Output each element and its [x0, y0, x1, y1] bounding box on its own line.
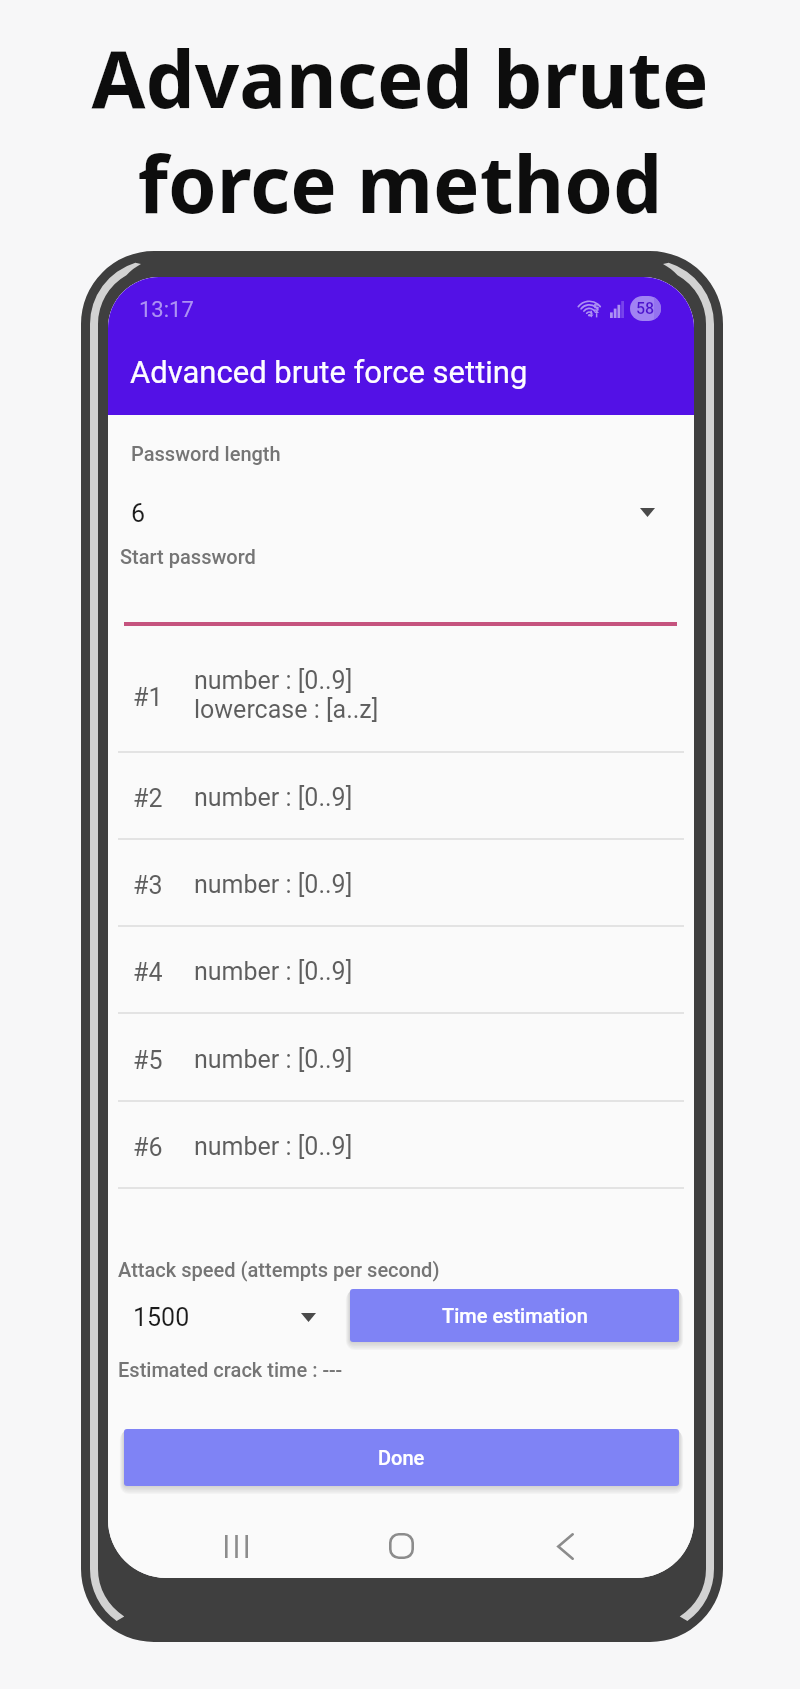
staticText: #6 [133, 1133, 163, 1162]
staticText: 13:17 [139, 297, 194, 323]
staticText: #3 [133, 871, 163, 900]
staticText: number : [0..9] [194, 1132, 353, 1161]
staticText: 1500 [133, 1303, 190, 1332]
staticText: Advanced brute force setting [130, 354, 528, 390]
staticText: Done [378, 1446, 425, 1469]
button[interactable]: #4 [108, 925, 694, 1012]
staticText: number : [0..9] [194, 666, 353, 695]
staticText: 6 [131, 499, 146, 528]
staticText: lowercase : [a..z] [194, 695, 379, 724]
button[interactable]: #6 [108, 1100, 694, 1187]
staticText: Estimated crack time : --- [118, 1358, 343, 1381]
button[interactable]: Back [515, 1506, 615, 1578]
button[interactable]: #3 [108, 838, 694, 925]
button[interactable]: Time estimation [350, 1289, 679, 1342]
button[interactable]: #5 [108, 1013, 694, 1100]
button[interactable]: Recent apps [186, 1506, 286, 1578]
staticText: number : [0..9] [194, 957, 353, 986]
staticText: #2 [133, 784, 163, 813]
staticText: Time estimation [442, 1304, 588, 1327]
staticText: #5 [133, 1046, 163, 1075]
staticText: #4 [133, 958, 163, 987]
button[interactable]: Home [351, 1506, 451, 1578]
staticText: #1 [133, 683, 163, 712]
staticText: Password length [131, 442, 281, 465]
staticText: number : [0..9] [194, 870, 353, 899]
staticText: Attack speed (attempts per second) [118, 1258, 440, 1281]
staticText: Start password [120, 545, 256, 568]
staticText: Advanced brute force method [0, 25, 800, 236]
button[interactable]: Done [124, 1429, 679, 1486]
button[interactable]: #2 [108, 751, 694, 838]
button[interactable]: #1 [108, 629, 694, 751]
button[interactable]: Select password length [624, 489, 670, 535]
staticText: number : [0..9] [194, 783, 353, 812]
staticText: number : [0..9] [194, 1045, 353, 1074]
button[interactable]: Select attack speed [285, 1294, 331, 1340]
staticText: 58 [636, 299, 655, 318]
